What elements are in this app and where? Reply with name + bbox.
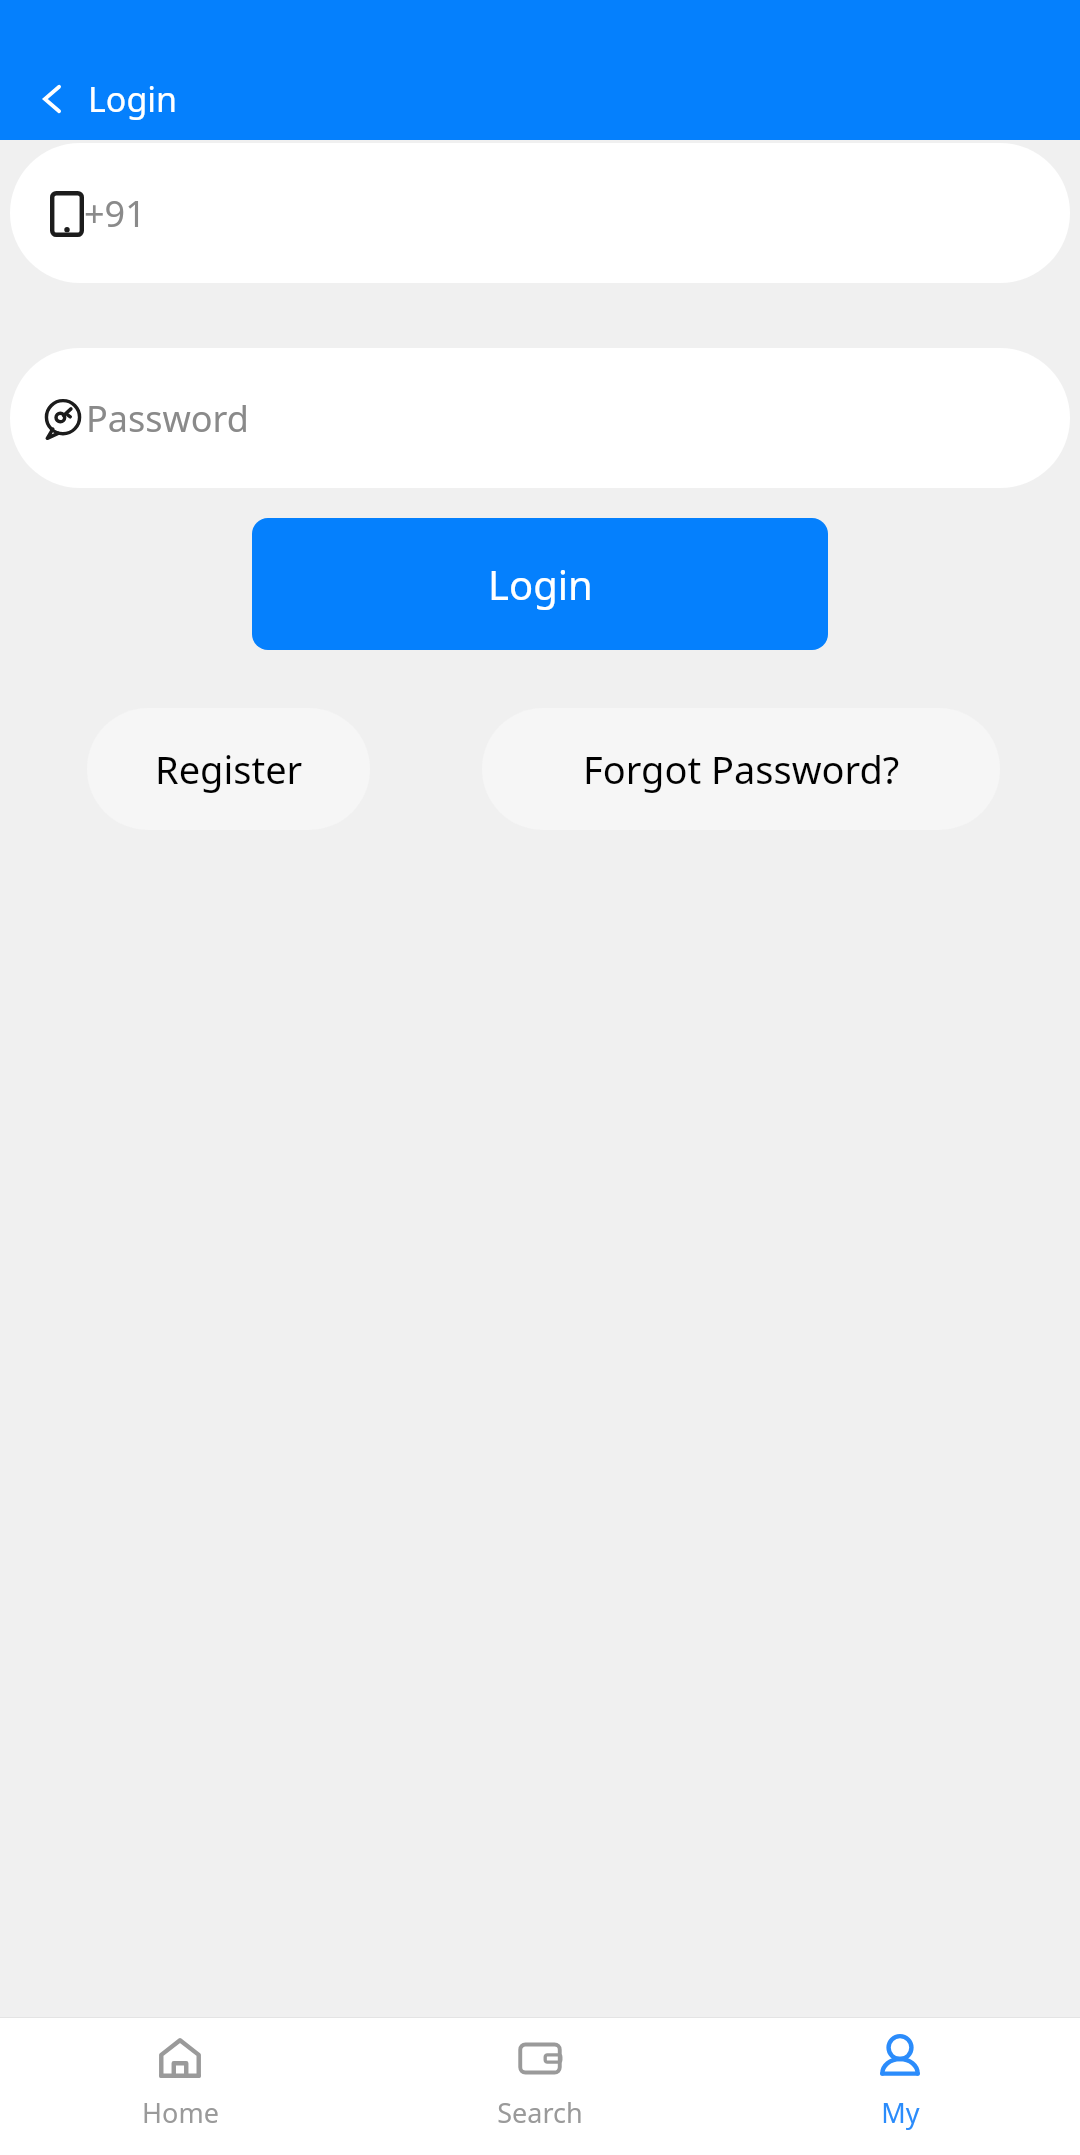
staticText: Login: [88, 76, 178, 122]
staticText: Register: [155, 743, 303, 795]
staticText: Password: [86, 394, 249, 443]
button[interactable]: Register: [87, 708, 370, 830]
button[interactable]: Back: [26, 72, 80, 126]
button[interactable]: Search: [360, 2018, 720, 2155]
staticText: Search: [497, 2094, 583, 2131]
staticText: My: [881, 2094, 920, 2131]
button[interactable]: Home: [0, 2018, 360, 2155]
button[interactable]: Password: [10, 348, 1070, 488]
button[interactable]: Login: [252, 518, 828, 650]
staticText: Home: [142, 2094, 219, 2131]
button[interactable]: Forgot Password?: [482, 708, 1000, 830]
button[interactable]: +91: [10, 143, 1070, 283]
staticText: +91: [84, 189, 146, 238]
button[interactable]: My: [720, 2018, 1080, 2155]
staticText: Forgot Password?: [583, 743, 900, 795]
staticText: Login: [488, 557, 593, 611]
